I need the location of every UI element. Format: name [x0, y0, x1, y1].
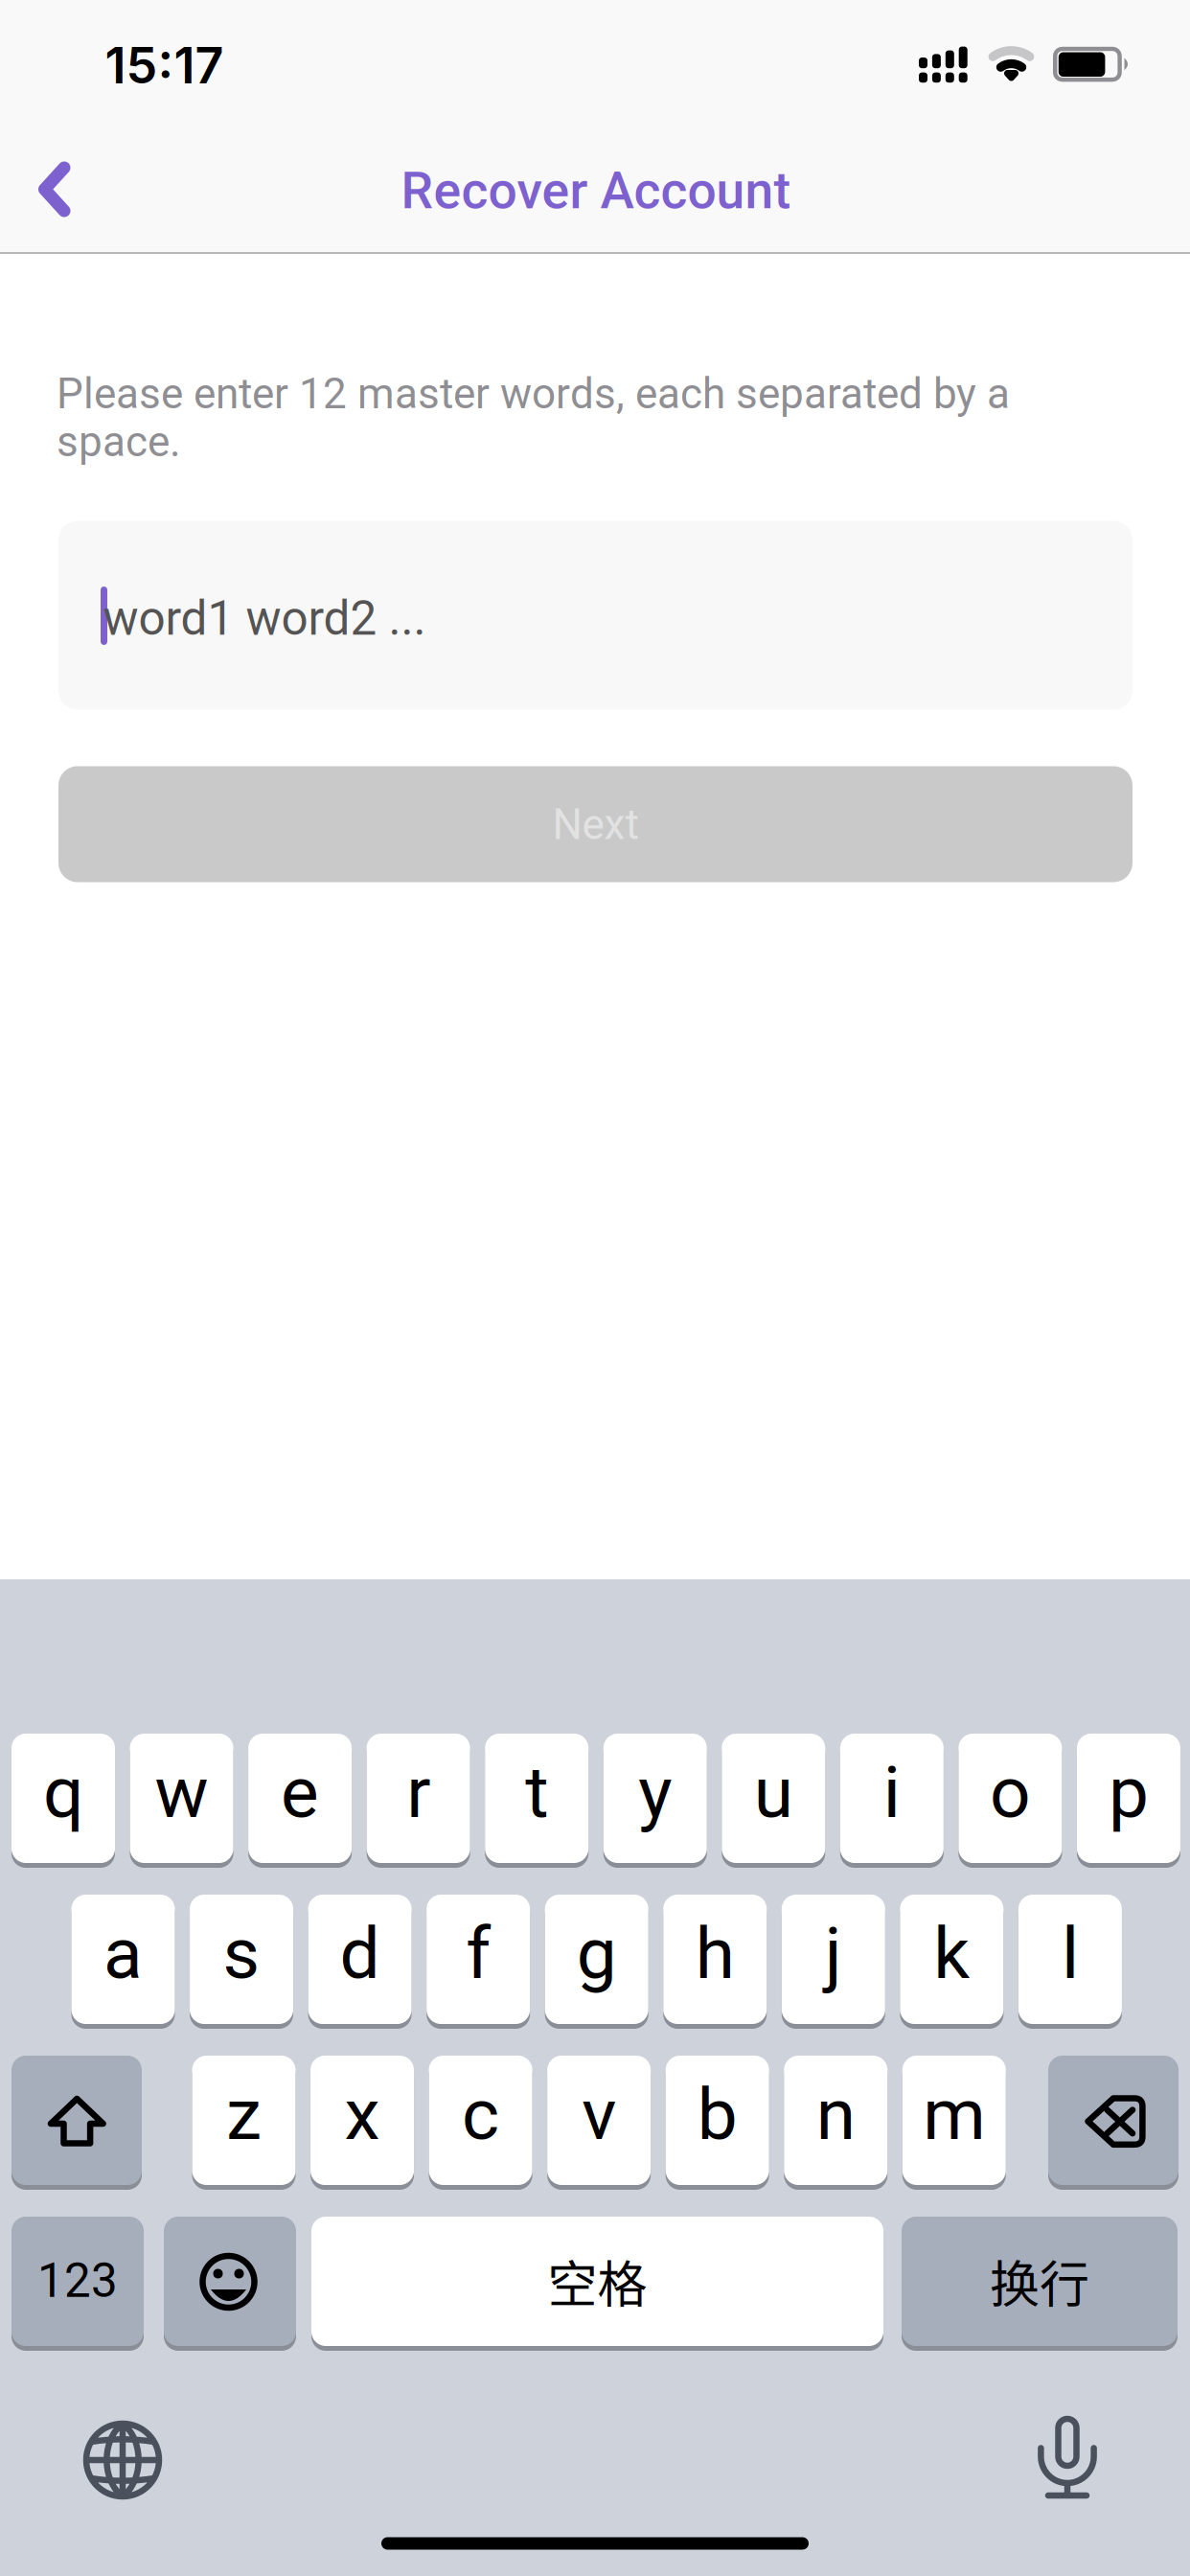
button[interactable]: Delete	[1048, 2056, 1179, 2190]
button[interactable]: t	[485, 1734, 588, 1868]
button[interactable]: j	[782, 1895, 885, 2029]
button[interactable]: q	[11, 1734, 115, 1868]
staticText: d	[340, 1912, 380, 1995]
staticText: u	[754, 1751, 793, 1834]
button[interactable]: 换行	[902, 2217, 1178, 2351]
button[interactable]: i	[840, 1734, 944, 1868]
staticText: h	[695, 1912, 735, 1995]
staticText: k	[934, 1912, 970, 1995]
staticText: w	[155, 1751, 208, 1834]
staticText: a	[103, 1912, 143, 1995]
staticText: l	[1062, 1912, 1079, 1995]
staticText: j	[825, 1912, 842, 1995]
staticText: Next	[552, 800, 639, 849]
staticText: b	[697, 2073, 737, 2156]
staticText: z	[226, 2073, 262, 2156]
button[interactable]: b	[666, 2056, 769, 2190]
button[interactable]: o	[959, 1734, 1062, 1868]
button[interactable]: z	[192, 2056, 296, 2190]
button[interactable]: m	[902, 2056, 1006, 2190]
staticText: p	[1109, 1751, 1149, 1834]
staticText: r	[406, 1751, 430, 1834]
button[interactable]: y	[603, 1734, 707, 1868]
staticText: y	[638, 1751, 672, 1834]
staticText: Please enter 12 master words, each separ…	[57, 369, 1010, 419]
button[interactable]: x	[311, 2056, 414, 2190]
staticText: 换行	[990, 2245, 1089, 2317]
staticText: n	[816, 2073, 855, 2156]
button[interactable]: 123	[11, 2217, 144, 2351]
button[interactable]: n	[784, 2056, 887, 2190]
button[interactable]: f	[426, 1895, 530, 2029]
staticText: t	[525, 1751, 548, 1834]
button[interactable]: a	[71, 1895, 175, 2029]
button[interactable]: Emoji	[164, 2217, 296, 2351]
button[interactable]: g	[545, 1895, 648, 2029]
staticText: o	[990, 1751, 1031, 1834]
button[interactable]: h	[663, 1895, 767, 2029]
button[interactable]: p	[1077, 1734, 1180, 1868]
staticText: i	[883, 1751, 901, 1834]
button[interactable]: Shift	[11, 2056, 142, 2190]
button[interactable]: c	[429, 2056, 532, 2190]
button[interactable]: d	[308, 1895, 412, 2029]
button[interactable]: r	[367, 1734, 470, 1868]
button[interactable]: Next keyboard	[79, 2416, 167, 2504]
button[interactable]: u	[722, 1734, 825, 1868]
staticText: space.	[57, 417, 181, 467]
staticText: x	[345, 2073, 380, 2156]
button[interactable]: l	[1018, 1895, 1122, 2029]
button[interactable]: Next	[58, 766, 1133, 882]
button[interactable]: k	[900, 1895, 1004, 2029]
button[interactable]: Back	[6, 135, 113, 242]
button[interactable]: e	[248, 1734, 352, 1868]
button[interactable]: Dictation	[1029, 2409, 1106, 2505]
button[interactable]: s	[190, 1895, 293, 2029]
staticText: 123	[37, 2253, 118, 2309]
staticText: s	[223, 1912, 260, 1995]
staticText: v	[582, 2073, 616, 2156]
staticText: Recover Account	[401, 161, 791, 221]
button[interactable]: v	[547, 2056, 651, 2190]
button[interactable]: Master words	[58, 521, 1133, 710]
button[interactable]: 空格	[311, 2217, 883, 2351]
button[interactable]: w	[130, 1734, 233, 1868]
staticText: word1 word2 ...	[103, 591, 426, 646]
staticText: e	[281, 1751, 319, 1834]
staticText: g	[577, 1912, 617, 1995]
staticText: q	[43, 1751, 83, 1834]
staticText: 空格	[548, 2245, 647, 2317]
staticText: f	[466, 1912, 491, 1995]
staticText: m	[923, 2073, 985, 2156]
staticText: c	[462, 2073, 499, 2156]
staticText: 15:17	[105, 35, 224, 95]
